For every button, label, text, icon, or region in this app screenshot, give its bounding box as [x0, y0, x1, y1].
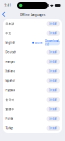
button[interactable]: Türkçe — [3, 123, 62, 133]
button[interactable]: Русский — [3, 85, 62, 95]
button[interactable]: 한국어 — [3, 95, 62, 104]
button[interactable]: 日本語 — [3, 19, 62, 28]
staticText: Install — [49, 107, 57, 111]
staticText: 9:41 — [4, 4, 11, 7]
staticText: 中文 — [5, 32, 11, 35]
button[interactable]: Français — [3, 57, 62, 66]
staticText: Install — [49, 60, 57, 63]
staticText: Install — [49, 98, 57, 101]
staticText: 日本語 — [5, 22, 14, 25]
button[interactable]: English — [3, 38, 62, 47]
staticText: Install — [49, 126, 57, 130]
button[interactable]: Español — [3, 76, 62, 85]
staticText: Install — [49, 22, 57, 25]
staticText: Active — [35, 41, 43, 44]
staticText: Türkçe — [5, 126, 13, 130]
staticText: Install — [49, 50, 57, 54]
staticText: Install — [49, 79, 57, 82]
staticText: Español — [5, 79, 15, 82]
staticText: 한국어 — [5, 98, 14, 101]
staticText: Install — [49, 117, 57, 120]
button[interactable]: Italiano — [3, 66, 62, 76]
staticText: Install — [49, 31, 57, 35]
button[interactable]: Polski — [3, 114, 62, 123]
staticText: Русский — [5, 88, 15, 92]
staticText: Install — [49, 69, 57, 73]
button[interactable]: Back — [2, 11, 9, 19]
button[interactable]: 中文 — [3, 28, 62, 38]
button[interactable]: Deutsch — [3, 47, 62, 57]
staticText: Deutsch — [5, 50, 16, 54]
staticText: Offline Languages — [20, 13, 45, 17]
button[interactable]: 繁體中 — [3, 104, 62, 114]
staticText: Italiano — [5, 69, 15, 73]
staticText: 繁體中 — [5, 108, 14, 111]
staticText: English — [5, 41, 15, 44]
staticText: Polski — [5, 117, 13, 120]
staticText: Downloaded — [45, 39, 60, 46]
staticText: Français — [5, 60, 14, 63]
staticText: Install — [49, 88, 57, 92]
